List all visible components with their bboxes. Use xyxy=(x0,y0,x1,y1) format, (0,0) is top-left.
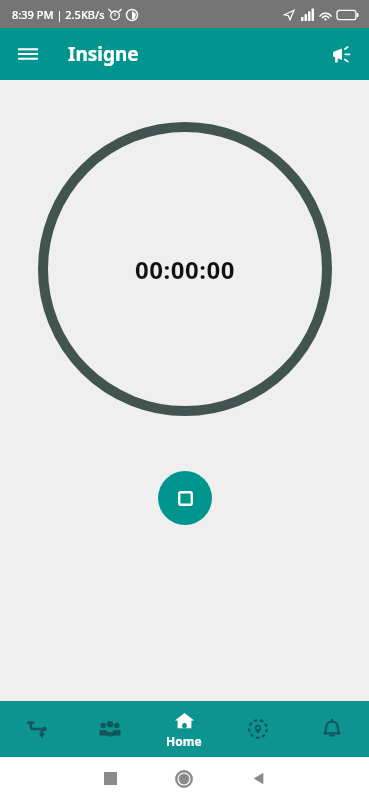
staticText: Home xyxy=(166,733,202,749)
button[interactable]: Routes xyxy=(0,701,73,757)
button[interactable]: Stop timer xyxy=(158,471,212,525)
button[interactable]: Groups xyxy=(73,701,147,757)
staticText: 00:00:00 xyxy=(135,253,235,286)
button[interactable]: Home xyxy=(147,757,221,800)
button[interactable]: Recent apps xyxy=(73,757,147,800)
button[interactable]: Back xyxy=(221,757,295,800)
button[interactable]: Announcements xyxy=(321,34,361,74)
staticText: Insigne xyxy=(68,41,139,67)
button[interactable]: Nearby xyxy=(221,701,295,757)
button[interactable]: 00:00:00 xyxy=(38,122,332,416)
staticText: 8:39 PM | 2.5KB/s xyxy=(12,7,105,22)
button[interactable]: Home xyxy=(147,701,221,757)
button[interactable]: Open navigation menu xyxy=(8,34,48,74)
button[interactable]: Notifications xyxy=(295,701,369,757)
